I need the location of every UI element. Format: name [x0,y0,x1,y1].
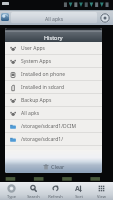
staticText: History [44,34,63,41]
staticText: Type [7,194,16,199]
staticText: All apks [45,16,64,23]
staticText: Refresh [48,194,63,199]
staticText: Backup Apps [21,97,52,104]
staticText: Installed on phone [21,71,66,78]
button[interactable]: App icon [1,13,9,21]
staticText: /storage/sdcard1/DCIM [21,123,77,130]
staticText: View [97,194,106,199]
button[interactable]: All apks [5,107,102,120]
button[interactable]: Installed in sdcard [5,81,102,94]
button[interactable]: Search [22,182,44,200]
button[interactable]: /storage/sdcard1/ [5,133,102,146]
staticText: Installed in sdcard [21,84,64,91]
button[interactable]: Installed on phone [5,68,102,81]
button[interactable]: Clear [37,161,71,172]
button[interactable]: View [90,182,113,200]
button[interactable]: A [67,182,90,200]
button[interactable]: Type [0,182,22,200]
staticText: Search [27,194,40,199]
staticText: /storage/sdcard1/ [21,136,64,143]
button[interactable]: Options [100,13,110,23]
button[interactable]: Refresh [44,182,67,200]
staticText: A [75,184,80,193]
button[interactable]: System Apps [5,55,102,68]
button[interactable]: All apks [11,12,97,23]
button[interactable]: User Apps [5,42,102,55]
staticText: Sort [75,194,83,199]
staticText: All apks [21,110,40,117]
staticText: System Apps [21,58,52,65]
button[interactable]: /storage/sdcard1/DCIM [5,120,102,133]
button[interactable]: Backup Apps [5,94,102,107]
staticText: User Apps [21,45,45,52]
staticText: Clear [51,163,65,170]
